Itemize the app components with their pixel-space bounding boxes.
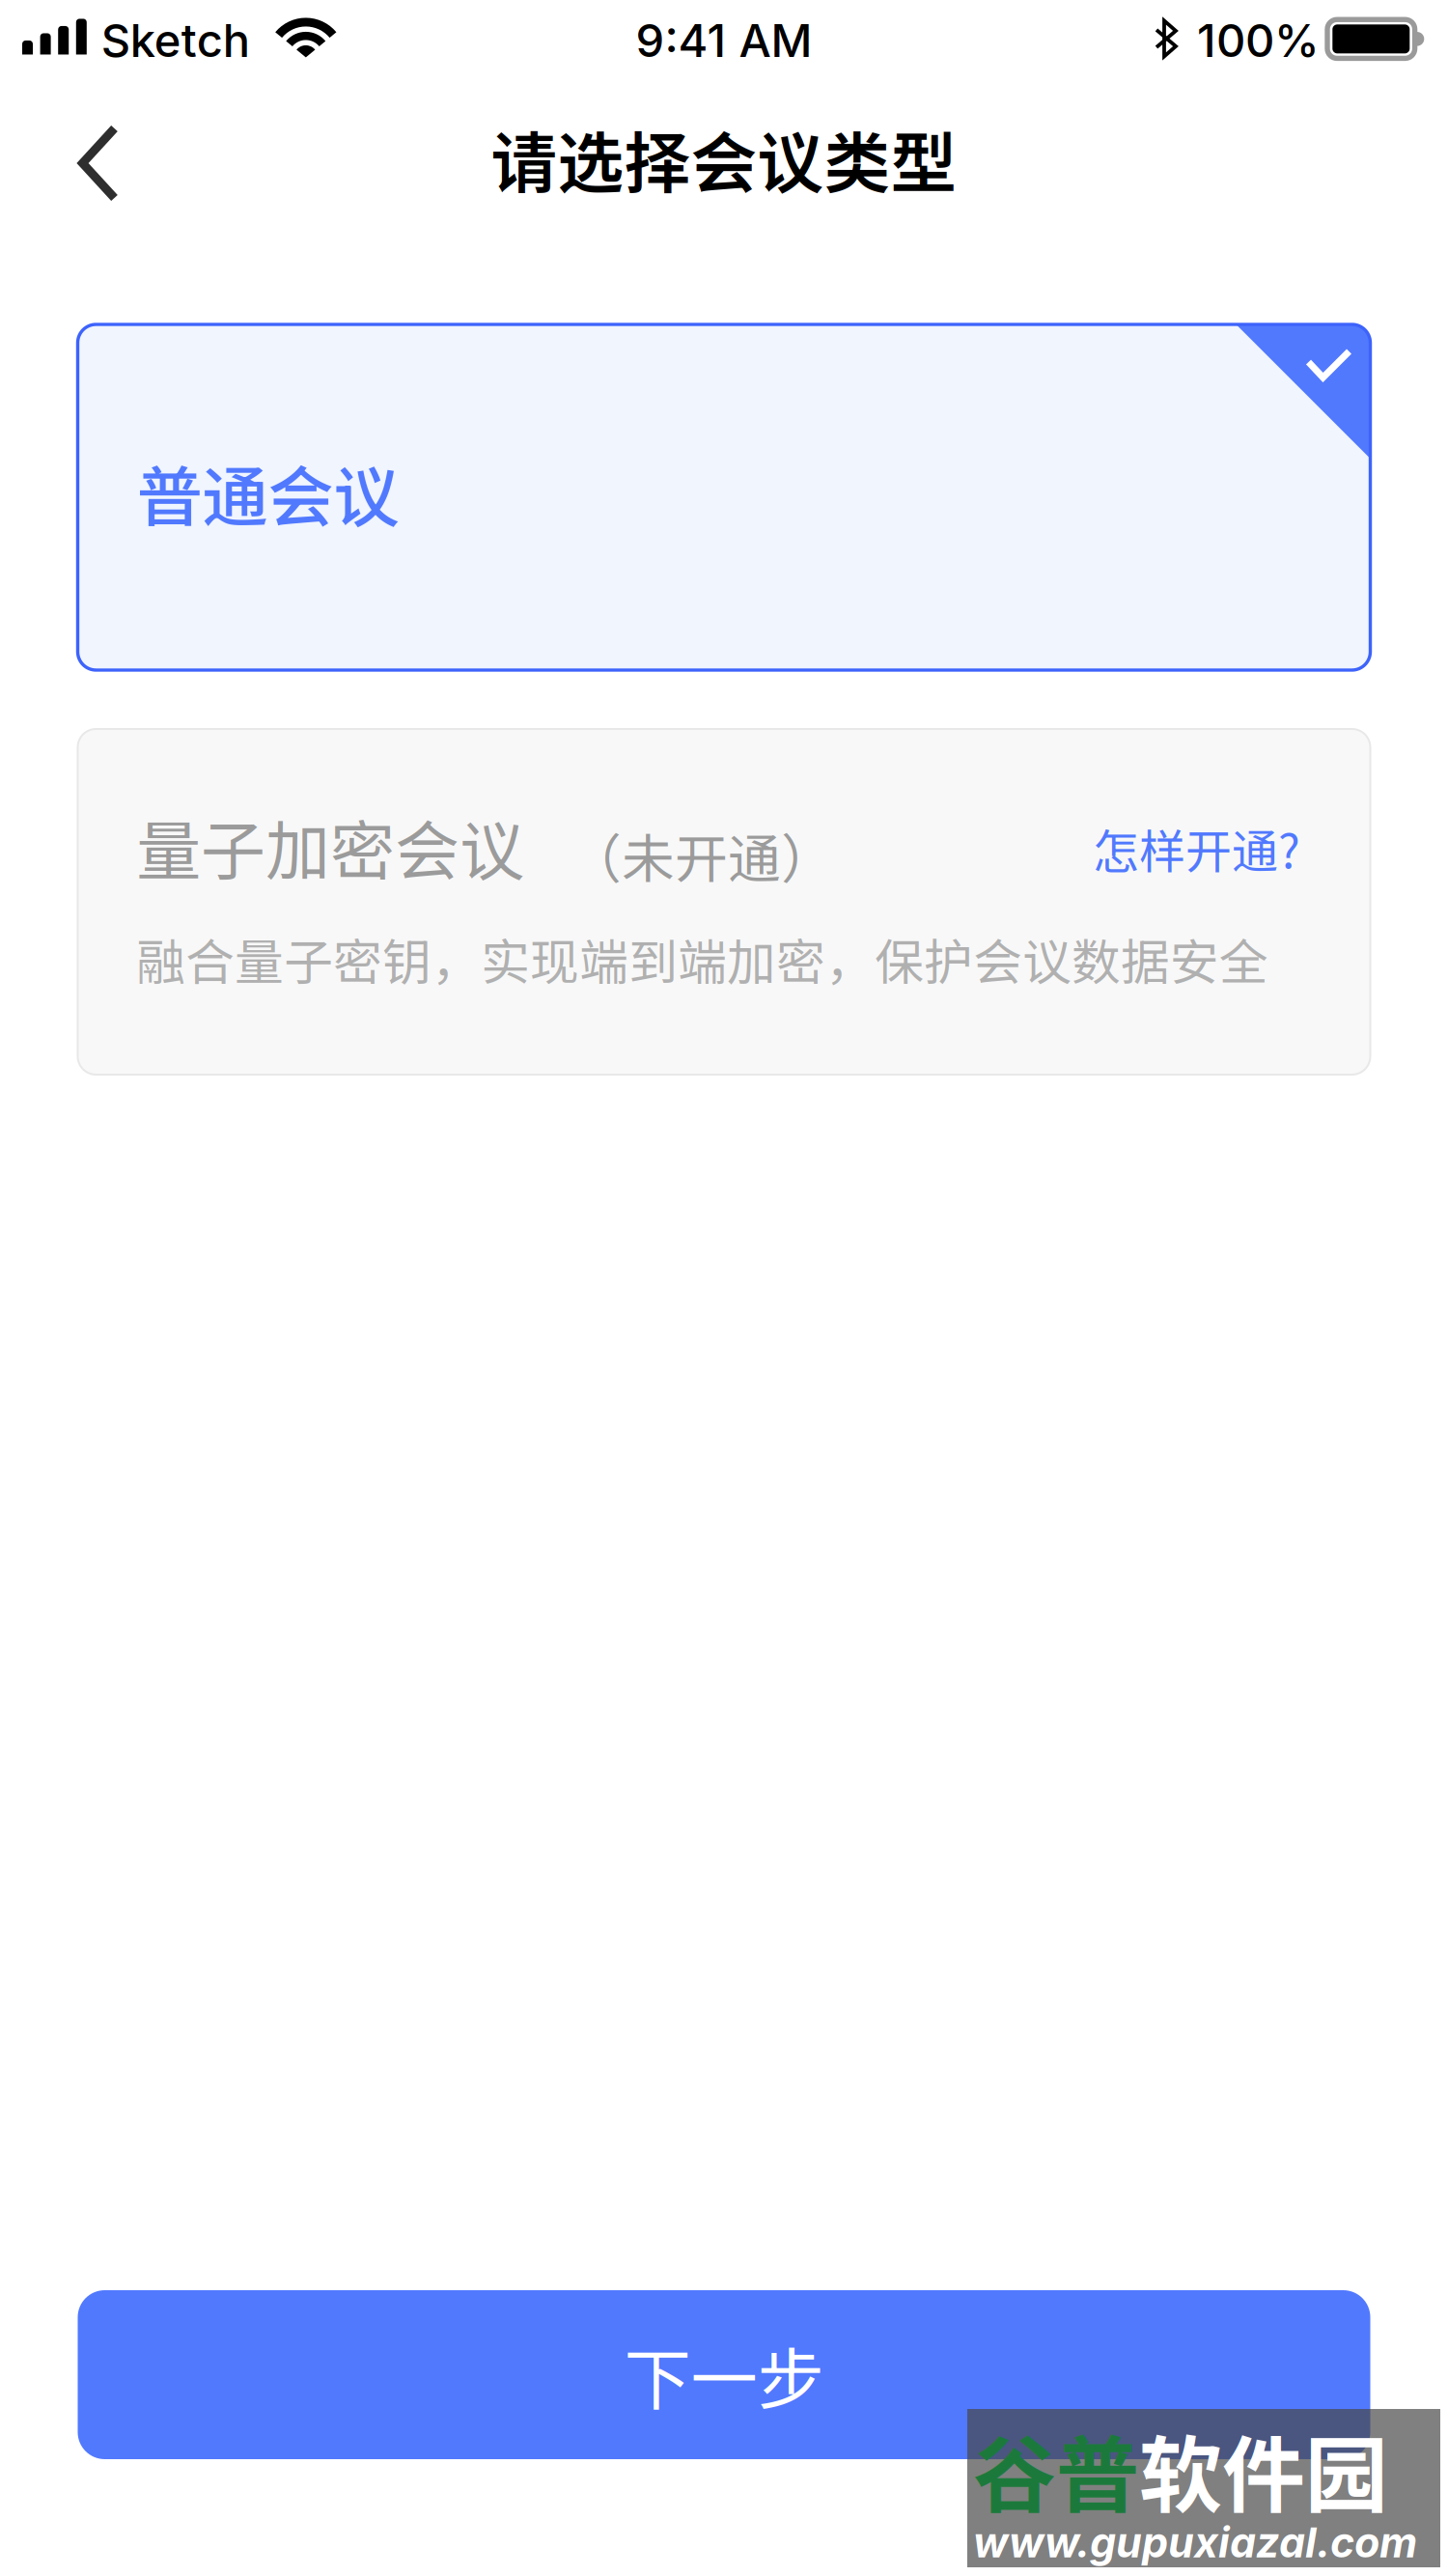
button[interactable]: 普通会议 <box>78 324 1370 670</box>
staticText: www.gupuxiazal.com <box>973 2517 1417 2567</box>
staticText: 普通会议 <box>137 445 399 540</box>
button[interactable]: Back <box>0 83 161 222</box>
staticText: 下一步 <box>624 2326 824 2423</box>
button[interactable]: 量子加密会议 <box>78 729 1370 1075</box>
staticText: 请选择会议类型 <box>491 110 957 206</box>
staticText: 量子加密会议 <box>136 800 524 893</box>
staticText: （未开通） <box>569 817 834 893</box>
staticText: 9:41 AM <box>636 13 812 68</box>
staticText: 怎样开通? <box>1093 815 1300 882</box>
button[interactable]: 怎样开通? <box>1093 815 1312 897</box>
staticText: 谷普 <box>973 2409 1139 2529</box>
staticText: 软件园 <box>1139 2409 1388 2529</box>
button[interactable]: 下一步 <box>78 2290 1370 2459</box>
staticText: Sketch <box>101 13 250 68</box>
staticText: 100% <box>1197 13 1320 68</box>
staticText: 融合量子密钥，实现端到端加密，保护会议数据安全 <box>136 923 1268 994</box>
